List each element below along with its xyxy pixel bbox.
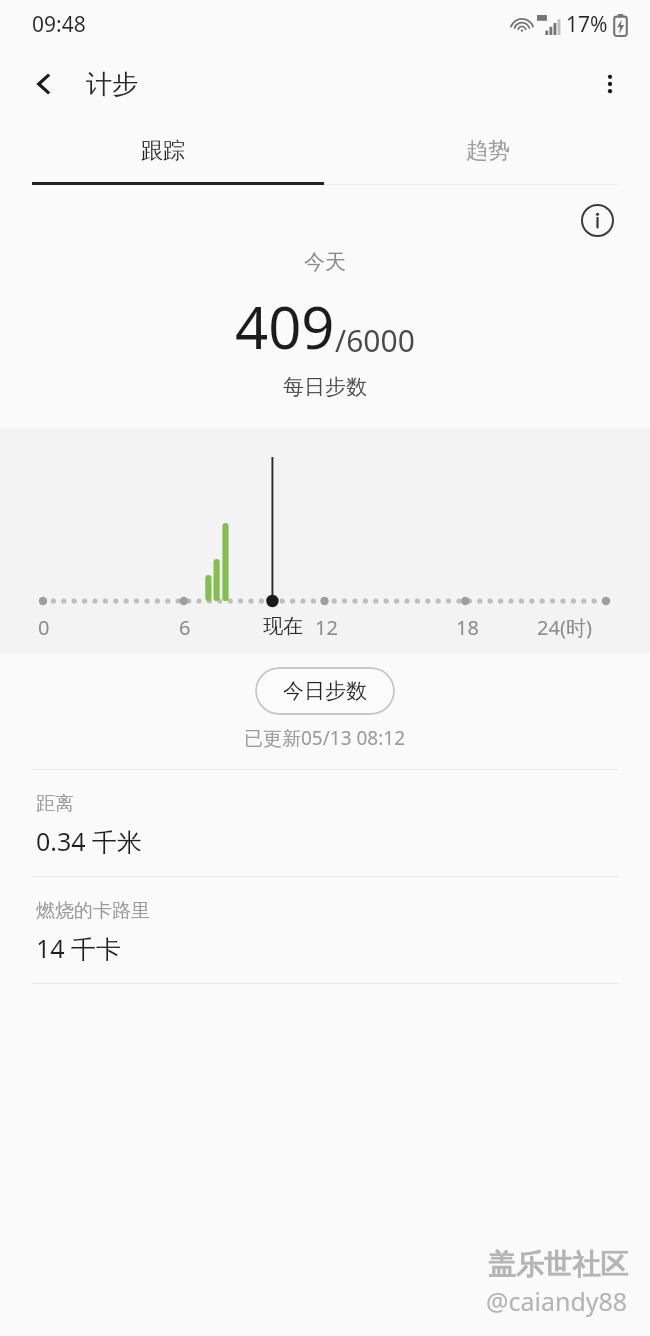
button[interactable]: 趋势	[325, 120, 650, 182]
button[interactable]: 跟踪	[0, 120, 325, 182]
staticText: 每日步数	[283, 374, 367, 400]
staticText: 6	[179, 614, 191, 641]
staticText: 已更新05/13 08:12	[244, 725, 406, 751]
staticText: /6000	[335, 320, 415, 361]
button[interactable]: 距离	[0, 770, 650, 876]
staticText: 距离	[36, 792, 74, 816]
staticText: 跟踪	[141, 137, 185, 165]
staticText: 趋势	[466, 137, 510, 165]
staticText: 14 千卡	[36, 931, 122, 965]
staticText: 今日步数	[283, 678, 367, 704]
button[interactable]: 燃烧的卡路里	[0, 877, 650, 983]
staticText: @caiandy88	[486, 1284, 628, 1318]
button[interactable]: 今日步数	[255, 667, 395, 715]
button[interactable]: Information	[576, 199, 618, 241]
staticText: 燃烧的卡路里	[36, 899, 150, 923]
staticText: 409	[235, 287, 335, 366]
staticText: 09:48	[32, 10, 86, 39]
staticText: 计步	[86, 68, 138, 101]
button[interactable]: More options	[586, 60, 634, 108]
staticText: 12	[315, 614, 338, 641]
staticText: 17%	[566, 10, 608, 39]
staticText: 0	[38, 614, 50, 641]
staticText: 18	[456, 614, 479, 641]
staticText: 24(时)	[537, 614, 592, 641]
staticText: 现在	[263, 614, 303, 639]
staticText: 盖乐世社区	[488, 1247, 628, 1282]
button[interactable]: Back	[20, 60, 68, 108]
staticText: 今天	[304, 249, 346, 275]
staticText: 0.34 千米	[36, 824, 143, 858]
